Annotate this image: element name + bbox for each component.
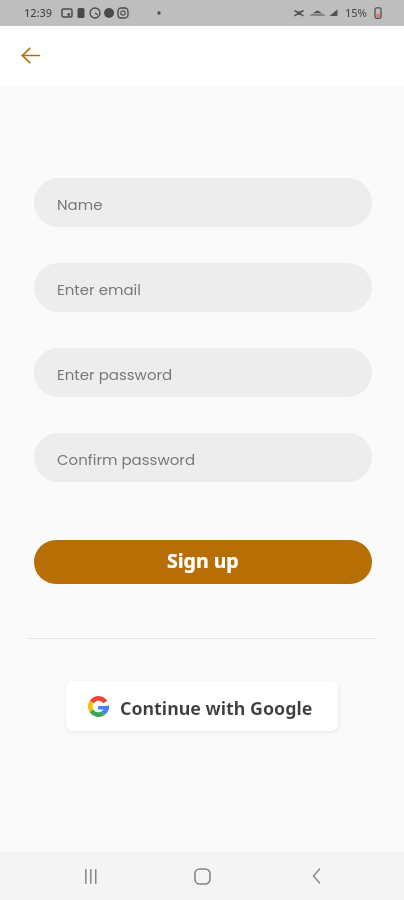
button[interactable]: Continue with Google <box>66 681 338 731</box>
button[interactable]: Name <box>34 178 372 227</box>
button[interactable]: Enter email <box>34 263 372 312</box>
button[interactable]: Sign up <box>34 540 372 584</box>
staticText: Continue with Google <box>120 696 313 720</box>
staticText: Enter email <box>57 279 141 300</box>
staticText: 15% <box>345 5 367 20</box>
staticText: Sign up <box>167 547 239 574</box>
button[interactable]: Back <box>293 852 341 900</box>
staticText: Name <box>57 194 103 215</box>
button[interactable]: Recent apps <box>66 852 114 900</box>
button[interactable]: Confirm password <box>34 433 372 482</box>
staticText: Confirm password <box>57 449 196 470</box>
staticText: Enter password <box>57 364 173 385</box>
staticText: 12:39 <box>24 5 53 20</box>
button[interactable]: Back <box>9 34 51 76</box>
button[interactable]: Enter password <box>34 348 372 397</box>
button[interactable]: Home <box>178 852 226 900</box>
